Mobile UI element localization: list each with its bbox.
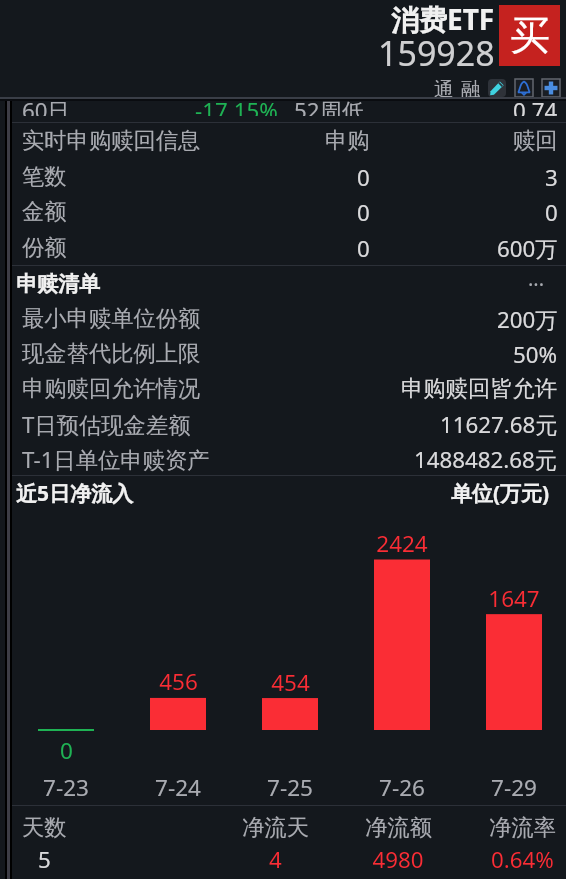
- staticText: 1647: [488, 583, 540, 614]
- staticText: 天数: [22, 814, 67, 842]
- staticText: 0.64%: [491, 844, 554, 874]
- button[interactable]: 60日: [0, 101, 566, 122]
- staticText: 5: [38, 844, 51, 874]
- staticText: 52周低: [294, 101, 365, 116]
- staticText: 7-23: [43, 772, 89, 803]
- staticText: 净流天: [242, 814, 309, 842]
- staticText: 11627.68元: [440, 409, 558, 439]
- staticText: T日预估现金差额: [22, 409, 191, 439]
- staticText: 0: [60, 735, 73, 766]
- staticText: 3: [545, 162, 558, 192]
- button[interactable]: 份额: [0, 230, 566, 265]
- staticText: 200万: [497, 304, 558, 334]
- staticText: 0: [357, 233, 370, 263]
- staticText: 2424: [376, 528, 428, 559]
- staticText: 50%: [513, 339, 558, 369]
- staticText: 笔数: [22, 163, 67, 191]
- staticText: 7-24: [155, 772, 201, 803]
- staticText: 金额: [22, 198, 67, 226]
- staticText: 0: [357, 197, 370, 227]
- button[interactable]: T-1日单位申赎资产: [0, 441, 566, 476]
- button[interactable]: Edit: [488, 79, 506, 97]
- button[interactable]: Add: [542, 79, 560, 97]
- staticText: 1488482.68元: [414, 444, 558, 474]
- staticText: 159928: [378, 30, 495, 76]
- button[interactable]: 笔数: [0, 159, 566, 194]
- staticText: 456: [159, 666, 198, 697]
- button[interactable]: 申购赎回允许情况: [0, 371, 566, 406]
- button[interactable]: 申赎清单: [0, 270, 566, 305]
- staticText: 消费ETF: [391, 0, 495, 38]
- staticText: 最小申赎单位份额: [22, 305, 201, 333]
- staticText: 4: [269, 844, 282, 874]
- staticText: 近5日净流入: [16, 479, 134, 508]
- staticText: 通: [434, 77, 454, 102]
- button[interactable]: Alerts: [515, 79, 533, 97]
- button[interactable]: T日预估现金差额: [0, 406, 566, 441]
- staticText: 申购赎回允许情况: [22, 375, 201, 403]
- button[interactable]: 最小申赎单位份额: [0, 301, 566, 336]
- staticText: 实时申购赎回信息: [22, 127, 201, 155]
- staticText: 买: [510, 10, 550, 60]
- staticText: 60日: [22, 101, 70, 116]
- staticText: 净流额: [365, 814, 432, 842]
- staticText: 单位(万元): [451, 479, 550, 508]
- staticText: 0.74: [513, 101, 558, 116]
- staticText: 7-29: [491, 772, 537, 803]
- staticText: 0: [545, 197, 558, 227]
- staticText: 454: [271, 667, 310, 698]
- staticText: 申赎清单: [16, 271, 100, 297]
- button[interactable]: 现金替代比例上限: [0, 336, 566, 371]
- staticText: 0: [357, 162, 370, 192]
- staticText: -17.15%: [195, 101, 278, 116]
- staticText: 7-25: [267, 772, 313, 803]
- staticText: 份额: [22, 234, 67, 262]
- staticText: 现金替代比例上限: [22, 340, 201, 368]
- staticText: 申购: [325, 127, 370, 155]
- staticText: ···: [528, 271, 545, 298]
- staticText: 7-26: [379, 772, 425, 803]
- button[interactable]: 买: [499, 5, 560, 66]
- button[interactable]: 实时申购赎回信息: [0, 123, 566, 158]
- staticText: T-1日单位申赎资产: [22, 444, 210, 474]
- staticText: 赎回: [513, 127, 558, 155]
- staticText: 600万: [497, 233, 558, 263]
- staticText: 融: [461, 77, 481, 102]
- staticText: 4980: [372, 844, 424, 874]
- button[interactable]: 金额: [0, 194, 566, 229]
- staticText: 申购赎回皆允许: [401, 375, 558, 403]
- staticText: 净流率: [489, 814, 556, 842]
